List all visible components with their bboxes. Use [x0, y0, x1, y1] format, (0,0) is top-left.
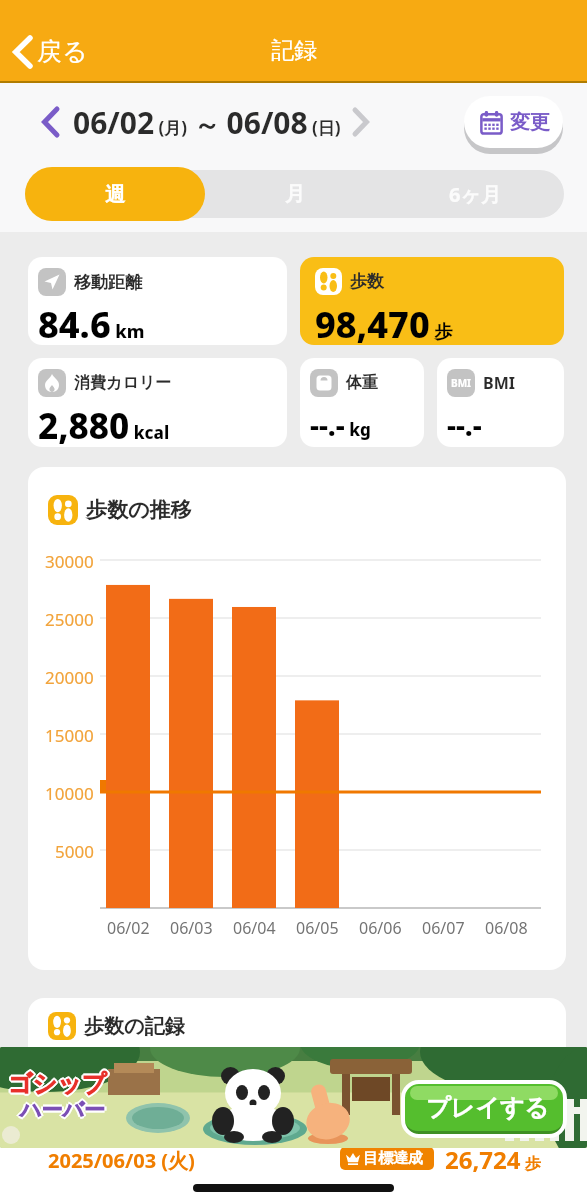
staticText: 歩数の記録 — [84, 1014, 185, 1039]
staticText: --.- — [447, 406, 482, 444]
staticText: 戻る — [37, 36, 88, 67]
button[interactable]: 消費カロリー — [28, 358, 287, 447]
staticText: 5000 — [55, 840, 94, 863]
staticText: 2,880 kcal — [38, 402, 170, 447]
staticText: ゴシップ — [9, 1070, 108, 1100]
staticText: ハーバー — [20, 1099, 105, 1125]
button[interactable]: プレイする — [0, 1047, 587, 1148]
staticText: 06/06 — [359, 917, 402, 939]
staticText: 06/03 — [170, 917, 213, 939]
staticText: ゴシップ — [9, 1068, 108, 1098]
staticText: BMI — [483, 372, 515, 394]
button[interactable]: 変更 — [464, 96, 563, 154]
staticText: 20000 — [45, 666, 94, 689]
staticText: 月 — [285, 182, 305, 207]
staticText: 30000 — [45, 550, 94, 573]
button[interactable]: 戻る — [13, 36, 88, 67]
staticText: 2025/06/03 (火) — [48, 1147, 195, 1174]
staticText: ゴシップ — [8, 1069, 107, 1099]
staticText: ハーバー — [18, 1097, 103, 1123]
staticText: 歩数 — [350, 271, 384, 292]
staticText: 体重 — [346, 373, 378, 393]
staticText: ゴシップ — [7, 1070, 106, 1100]
staticText: ゴシップ — [8, 1071, 107, 1101]
staticText: ゴシップ — [8, 1067, 107, 1097]
button[interactable]: BMI — [437, 358, 564, 447]
staticText: 10000 — [45, 782, 94, 805]
staticText: ハーバー — [22, 1097, 107, 1123]
staticText: ゴシップ — [10, 1069, 109, 1099]
button[interactable]: 6ヶ月 — [385, 170, 564, 218]
staticText: 25000 — [45, 608, 94, 631]
staticText: 06/07 — [422, 917, 465, 939]
button[interactable]: 06/02 (月) ～ 06/08 (日) — [42, 96, 369, 148]
staticText: 6ヶ月 — [449, 181, 501, 208]
staticText: ゴシップ — [6, 1069, 105, 1099]
staticText: 週 — [105, 182, 125, 207]
staticText: プレイする — [426, 1093, 549, 1123]
button[interactable]: 歩数 — [300, 257, 564, 345]
staticText: 26,724 歩 — [445, 1143, 541, 1176]
staticText: 15000 — [45, 724, 94, 747]
staticText: 記録 — [271, 36, 317, 65]
staticText: 84.6 km — [38, 300, 145, 345]
staticText: 06/08 — [485, 917, 528, 939]
staticText: 06/02 — [107, 917, 150, 939]
staticText: ハーバー — [20, 1097, 105, 1123]
staticText: 歩数の推移 — [86, 497, 192, 523]
button[interactable]: 移動距離 — [28, 257, 287, 345]
staticText: 目標達成 — [363, 1149, 423, 1168]
staticText: 06/05 — [296, 917, 339, 939]
staticText: 移動距離 — [74, 272, 142, 293]
staticText: --.- kg — [310, 406, 371, 444]
staticText: ゴシップ — [7, 1068, 106, 1098]
staticText: BMI — [451, 376, 471, 390]
button[interactable]: 週 — [25, 167, 205, 221]
button[interactable]: 体重 — [300, 358, 424, 447]
staticText: 06/04 — [233, 917, 276, 939]
staticText: ハーバー — [20, 1095, 105, 1121]
staticText: 06/02 (月) ～ 06/08 (日) — [73, 102, 341, 143]
staticText: 98,470 歩 — [315, 300, 453, 345]
staticText: 変更 — [510, 110, 550, 135]
staticText: 消費カロリー — [74, 373, 172, 393]
